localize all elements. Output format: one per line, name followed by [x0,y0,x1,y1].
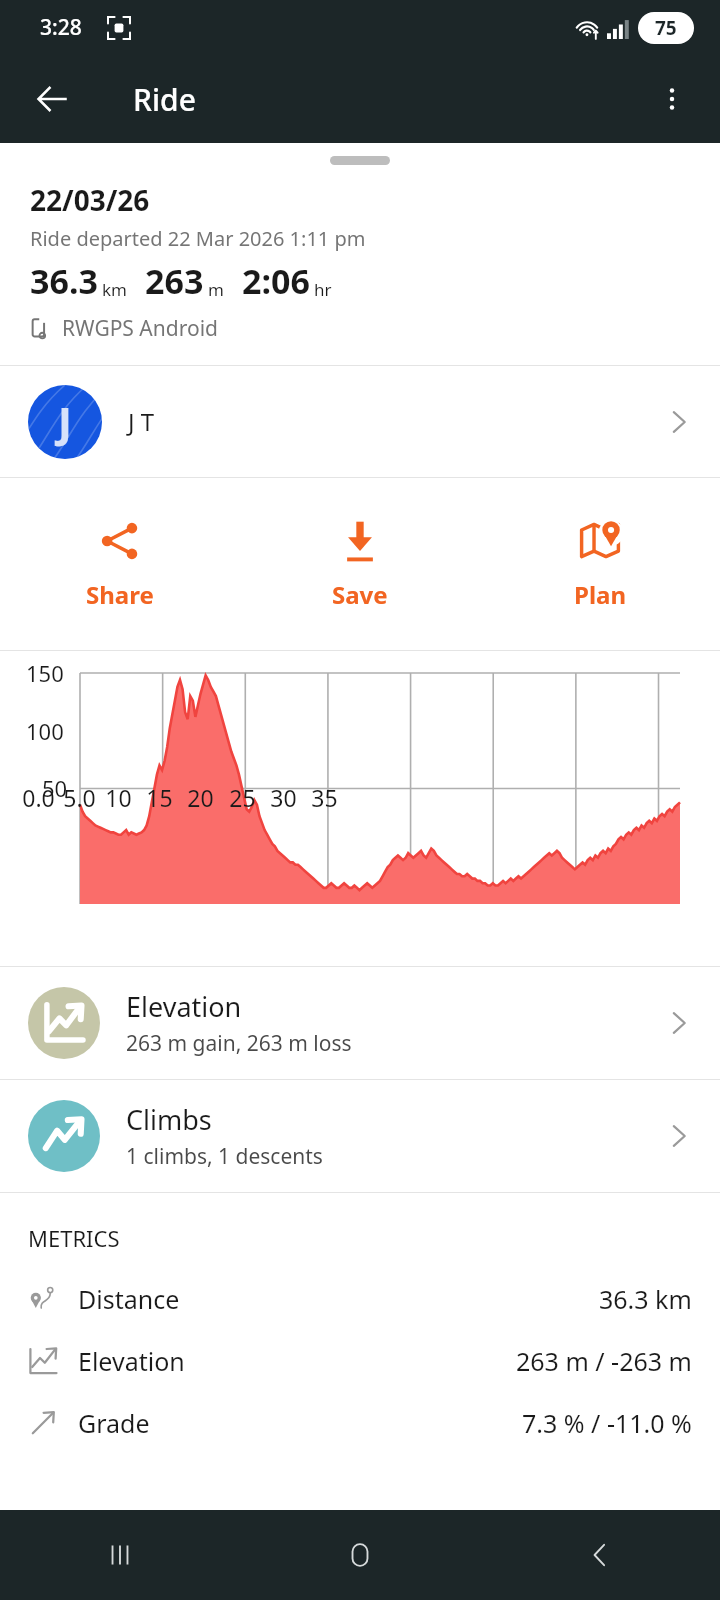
button[interactable]: More options [642,69,702,129]
button[interactable]: Back [480,1510,720,1600]
staticText: 25 [229,782,256,813]
button[interactable]: Home [240,1510,480,1600]
staticText: Distance [78,1282,180,1316]
staticText: km [102,278,127,301]
button[interactable]: Share [0,478,240,650]
staticText: Grade [78,1406,150,1440]
staticText: Plan [574,578,627,611]
staticText: 3:28 [40,13,82,42]
staticText: J [58,393,72,450]
staticText: m [208,278,224,301]
staticText: 1 climbs, 1 descents [126,1142,323,1171]
staticText: 30 [270,782,297,813]
staticText: 20 [187,782,214,813]
button[interactable]: Recents [0,1510,240,1600]
staticText: hr [314,278,332,301]
staticText: Save [332,578,388,611]
staticText: 100 [26,716,64,746]
staticText: 263 m / -263 m [516,1344,692,1378]
staticText: Ride departed 22 Mar 2026 1:11 pm [30,225,366,252]
staticText: Share [86,578,154,611]
staticText: METRICS [28,1223,120,1253]
staticText: 50 [42,773,68,803]
staticText: 263 m gain, 263 m loss [126,1029,352,1058]
staticText: 22/03/26 [30,181,150,219]
button[interactable]: Back [22,69,82,129]
staticText: 7.3 % / -11.0 % [522,1406,692,1440]
button[interactable]: Climbs [0,1080,720,1192]
button[interactable]: Plan [480,478,720,650]
staticText: 0.0 [22,782,55,813]
staticText: 2:06 [242,258,310,304]
staticText: 35 [311,782,338,813]
staticText: 10 [105,782,132,813]
staticText: 75 [655,15,677,41]
staticText: Climbs [126,1101,212,1138]
staticText: J T [128,405,155,438]
staticText: 263 [145,258,204,304]
staticText: 150 [26,658,64,688]
staticText: Ride [133,79,196,120]
staticText: Elevation [78,1344,185,1378]
staticText: Elevation [126,988,242,1025]
staticText: 15 [146,782,173,813]
staticText: 36.3 km [599,1282,692,1316]
staticText: 36.3 [30,258,98,304]
staticText: RWGPS Android [62,314,218,343]
button[interactable]: Elevation [0,967,720,1079]
staticText: 5.0 [63,782,96,813]
button[interactable]: J [0,366,720,477]
button[interactable]: Save [240,478,480,650]
